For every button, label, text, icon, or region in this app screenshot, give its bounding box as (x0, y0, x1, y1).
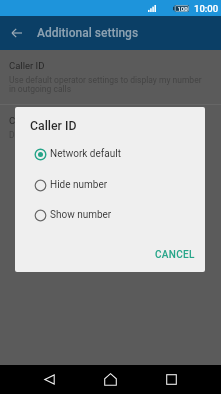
staticText: Caller ID (9, 60, 45, 71)
staticText: Caller ID (30, 119, 77, 133)
button[interactable]: CANCEL (148, 243, 202, 267)
staticText: Hide number (50, 179, 108, 191)
button[interactable]: Home (92, 365, 129, 394)
staticText: Use default operator settings to display… (9, 75, 210, 94)
button[interactable]: Caller ID (0, 50, 221, 104)
button[interactable]: Call barring (0, 105, 221, 150)
staticText: 100 (177, 5, 188, 12)
staticText: CANCEL (155, 249, 195, 261)
button[interactable]: Network default (15, 139, 205, 169)
button[interactable]: Recent apps (153, 365, 190, 394)
staticText: Call barring (9, 115, 58, 126)
staticText: Show number (50, 209, 112, 221)
staticText: 10:00 (194, 3, 219, 14)
staticText: Additional settings (37, 26, 139, 40)
button[interactable]: Show number (15, 200, 205, 230)
button[interactable]: Back (31, 365, 68, 394)
button[interactable]: Navigate up (0, 16, 34, 50)
staticText: Network default (50, 148, 121, 160)
button[interactable]: Hide number (15, 170, 205, 200)
staticText: Disabled (9, 130, 210, 140)
